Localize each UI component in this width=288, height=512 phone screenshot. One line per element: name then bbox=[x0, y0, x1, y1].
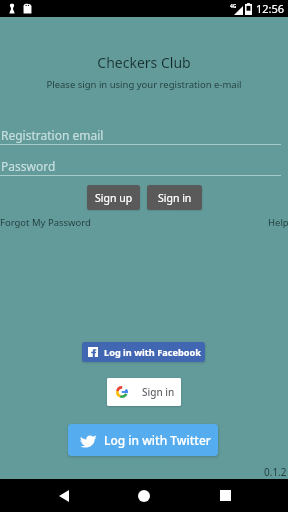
staticText: Checkers Club bbox=[0, 53, 288, 72]
staticText: 12:56 bbox=[256, 1, 285, 16]
button[interactable]: Sign in bbox=[147, 185, 202, 210]
staticText: 4G bbox=[230, 3, 237, 10]
staticText: Password bbox=[1, 158, 56, 174]
button[interactable]: Help bbox=[268, 216, 288, 229]
button[interactable]: Recent apps bbox=[208, 479, 242, 512]
staticText: Sign in bbox=[158, 191, 192, 205]
staticText: 0.1.2 bbox=[264, 465, 287, 479]
staticText: Log in with Facebook bbox=[104, 346, 201, 359]
staticText: Sign in bbox=[142, 385, 175, 399]
button[interactable]: Log in with Facebook bbox=[82, 342, 205, 362]
staticText: Please sign in using your registration e… bbox=[0, 78, 288, 91]
staticText: Registration email bbox=[1, 127, 104, 143]
button[interactable]: Home bbox=[127, 479, 161, 512]
staticText: Sign up bbox=[95, 191, 133, 205]
button[interactable]: Sign in bbox=[107, 378, 181, 406]
staticText: Forgot My Password bbox=[0, 216, 91, 229]
staticText: Help bbox=[268, 216, 288, 229]
button[interactable]: Log in with Twitter bbox=[68, 424, 218, 456]
button[interactable]: Back bbox=[47, 479, 81, 512]
staticText: Log in with Twitter bbox=[104, 432, 211, 448]
button[interactable]: Forgot My Password bbox=[0, 216, 91, 229]
button[interactable]: Sign up bbox=[87, 185, 140, 210]
